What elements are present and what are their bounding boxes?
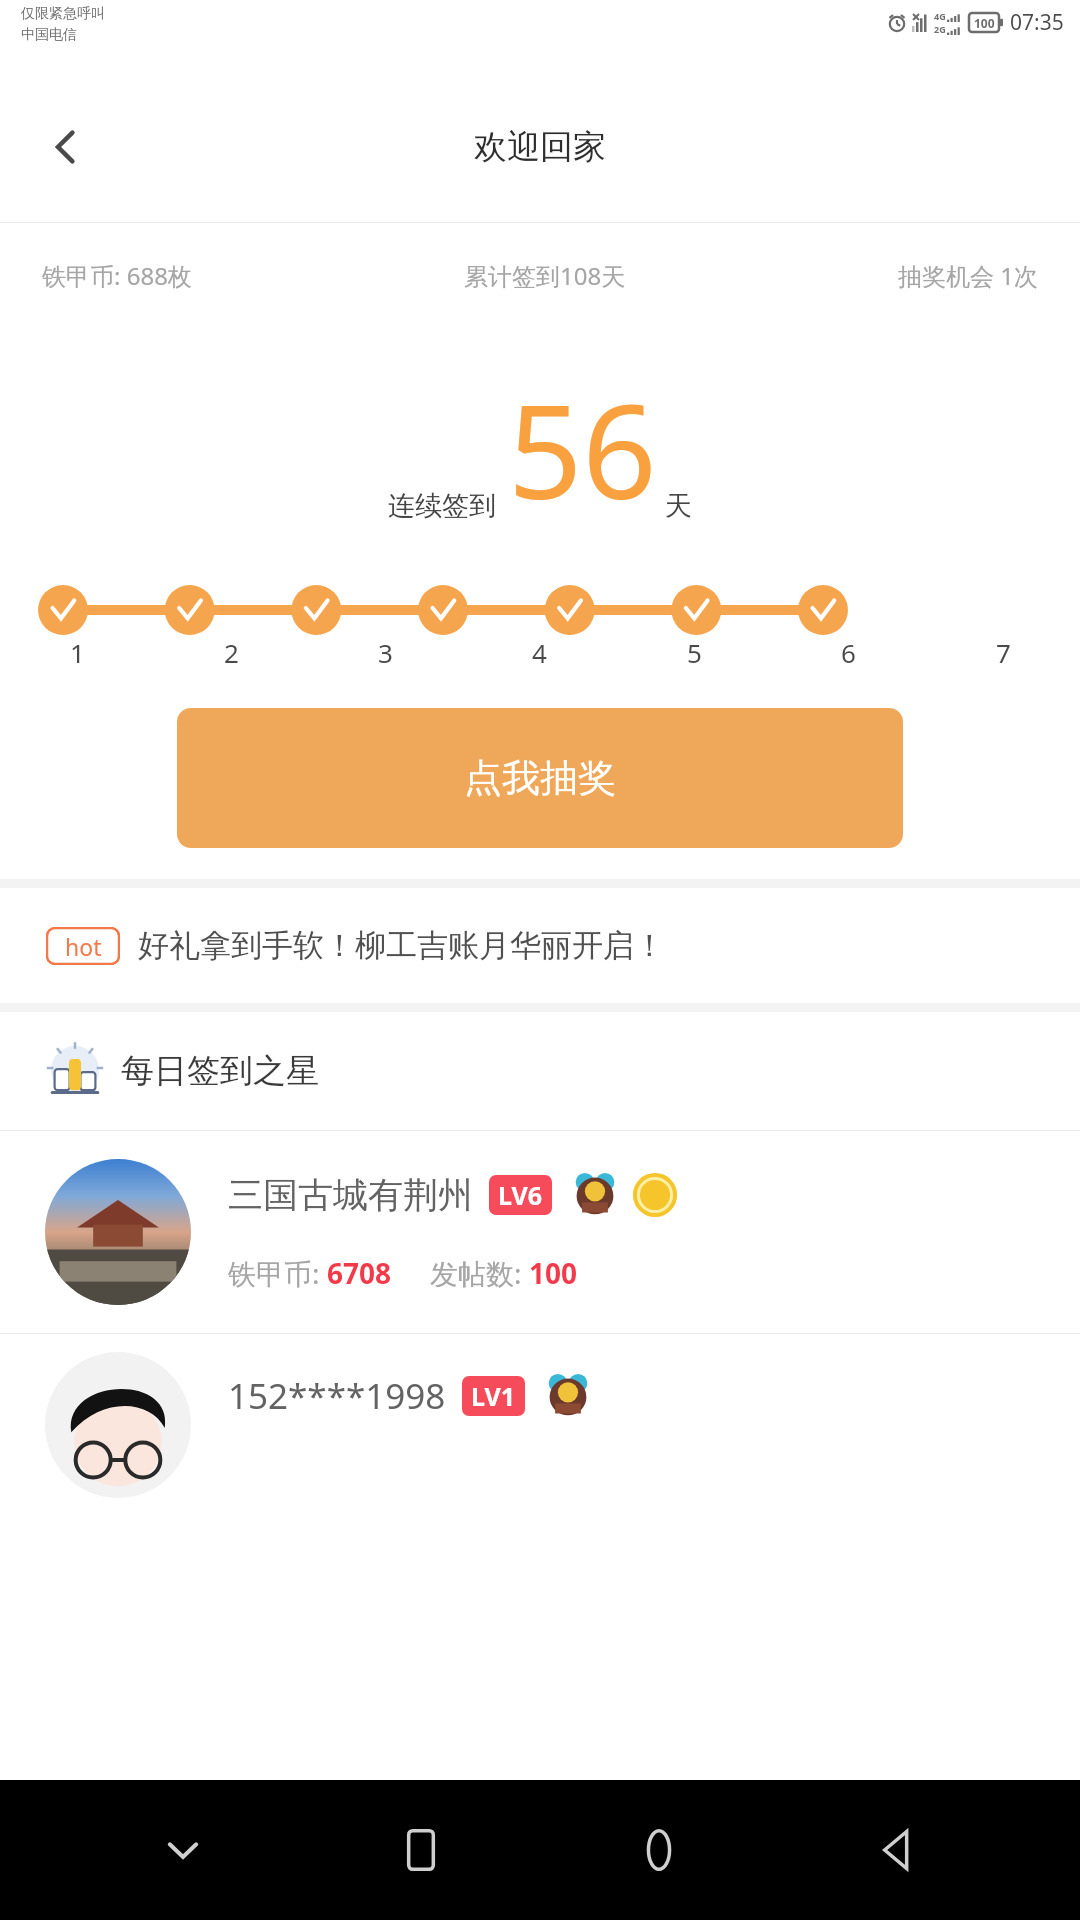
staticText: 100: [529, 1254, 578, 1292]
staticText: 点我抽奖: [464, 754, 616, 802]
staticText: 天: [665, 489, 692, 523]
staticText: 6: [841, 635, 856, 670]
staticText: 每日签到之星: [121, 1050, 319, 1092]
staticText: 152****1998: [228, 1372, 446, 1420]
button[interactable]: hot: [0, 888, 1080, 1003]
staticText: 铁甲币: 688枚: [42, 259, 192, 292]
staticText: 56: [508, 360, 657, 537]
button[interactable]: 点我抽奖: [177, 708, 903, 848]
staticText: 07:35: [1010, 8, 1064, 37]
staticText: LV6: [498, 1178, 543, 1212]
staticText: 5: [687, 635, 702, 670]
staticText: 抽奖机会 1次: [898, 259, 1038, 292]
staticText: hot: [65, 931, 102, 962]
staticText: 好礼拿到手软！柳工吉账月华丽开启！: [138, 926, 665, 965]
staticText: 3: [378, 635, 393, 670]
staticText: 2G: [934, 23, 946, 35]
button[interactable]: Back: [30, 111, 102, 183]
staticText: LV1: [471, 1379, 516, 1413]
button[interactable]: Recents: [366, 1795, 476, 1905]
button[interactable]: Podium: [0, 1012, 1080, 1130]
staticText: 2: [224, 635, 239, 670]
staticText: 4: [532, 635, 547, 670]
staticText: 中国电信: [21, 26, 77, 44]
other: Podium: [45, 1041, 105, 1101]
staticText: 6708: [327, 1254, 392, 1292]
staticText: 欢迎回家: [474, 126, 606, 168]
staticText: 连续签到: [388, 489, 496, 523]
staticText: 三国古城有荆州: [228, 1173, 473, 1217]
button[interactable]: Back: [842, 1795, 952, 1905]
staticText: 7: [996, 635, 1011, 670]
button[interactable]: Hide keyboard: [128, 1795, 238, 1905]
button[interactable]: 152****1998: [0, 1334, 1080, 1534]
staticText: 4G: [934, 10, 946, 22]
staticText: 1: [70, 635, 85, 670]
button[interactable]: Home: [604, 1795, 714, 1905]
staticText: 仅限紧急呼叫: [21, 5, 105, 23]
button[interactable]: 三国古城有荆州: [0, 1131, 1080, 1333]
staticText: 累计签到108天: [464, 259, 626, 292]
staticText: 发帖数:: [430, 1254, 529, 1292]
staticText: 铁甲币:: [228, 1254, 327, 1292]
staticText: 100: [974, 15, 995, 31]
